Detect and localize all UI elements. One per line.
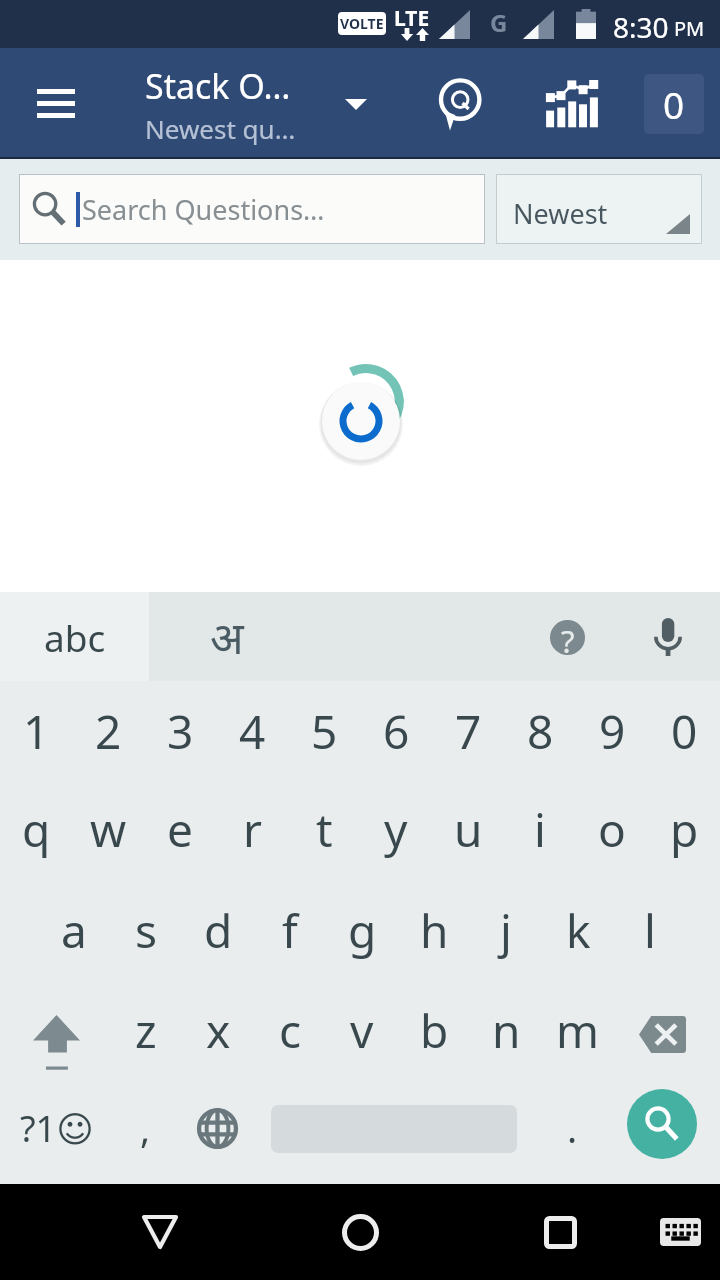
button[interactable]: r xyxy=(216,780,288,878)
button[interactable]: Help xyxy=(537,607,597,667)
staticText: 2 xyxy=(95,700,122,763)
button[interactable]: 1 xyxy=(0,682,72,780)
button[interactable]: t xyxy=(288,780,360,878)
button[interactable]: s xyxy=(110,881,182,979)
staticText: ? xyxy=(561,620,575,655)
button[interactable]: e xyxy=(144,780,216,878)
button[interactable]: अ xyxy=(149,592,304,681)
staticText: PM xyxy=(674,15,705,42)
staticText: s xyxy=(135,899,158,962)
button[interactable]: a xyxy=(38,881,110,979)
button[interactable]: m xyxy=(542,981,614,1079)
button[interactable]: Search Questions… xyxy=(19,174,485,244)
staticText: r xyxy=(243,798,262,861)
staticText: VOLTE xyxy=(340,14,384,33)
staticText: 4 xyxy=(239,700,266,763)
button[interactable]: ?1☺ xyxy=(2,1084,112,1172)
button[interactable]: 2 xyxy=(72,682,144,780)
staticText: 6 xyxy=(383,700,410,763)
button[interactable]: 0 xyxy=(648,682,720,780)
staticText: 3 xyxy=(167,700,194,763)
staticText: v xyxy=(350,999,374,1062)
staticText: i xyxy=(534,798,546,861)
button[interactable]: Newest xyxy=(496,174,702,244)
staticText: w xyxy=(90,798,127,861)
button[interactable]: Change filter xyxy=(322,70,390,138)
button[interactable]: v xyxy=(326,981,398,1079)
staticText: f xyxy=(282,899,298,962)
button[interactable]: Recent apps xyxy=(512,1184,608,1280)
button[interactable]: n xyxy=(470,981,542,1079)
button[interactable]: Space xyxy=(260,1092,528,1166)
staticText: 0 xyxy=(671,700,698,763)
button[interactable]: 0 xyxy=(644,74,704,134)
staticText: Newest qu… xyxy=(145,111,296,146)
button[interactable]: 7 xyxy=(432,682,504,780)
staticText: G xyxy=(490,6,508,39)
staticText: m xyxy=(556,999,600,1062)
staticText: t xyxy=(316,798,333,861)
button[interactable]: w xyxy=(72,780,144,878)
staticText: o xyxy=(598,798,626,861)
staticText: c xyxy=(279,999,302,1062)
button[interactable]: Back xyxy=(112,1184,208,1280)
button[interactable]: q xyxy=(0,780,72,878)
button[interactable]: Home xyxy=(312,1184,408,1280)
button[interactable]: Shift xyxy=(10,992,103,1092)
button[interactable]: j xyxy=(470,881,542,979)
staticText: . xyxy=(567,1102,578,1154)
staticText: LTE xyxy=(394,4,430,33)
staticText: e xyxy=(167,798,193,861)
button[interactable]: f xyxy=(254,881,326,979)
button[interactable]: d xyxy=(182,881,254,979)
button[interactable]: b xyxy=(398,981,470,1079)
staticText: d xyxy=(204,899,233,962)
staticText: abc xyxy=(44,612,106,662)
button[interactable]: . xyxy=(542,1084,602,1172)
button[interactable]: p xyxy=(648,780,720,878)
button[interactable]: i xyxy=(504,780,576,878)
button[interactable]: Voice input xyxy=(638,607,698,667)
button[interactable]: y xyxy=(360,780,432,878)
button[interactable]: Ask a question xyxy=(424,60,498,148)
button[interactable]: 8 xyxy=(504,682,576,780)
staticText: n xyxy=(492,999,521,1062)
button[interactable]: 4 xyxy=(216,682,288,780)
staticText: b xyxy=(420,999,449,1062)
button[interactable]: Backspace xyxy=(616,988,708,1080)
button[interactable]: g xyxy=(326,881,398,979)
button[interactable]: 3 xyxy=(144,682,216,780)
button[interactable]: Hide keyboard xyxy=(640,1192,720,1272)
staticText: 8 xyxy=(527,700,554,763)
staticText: k xyxy=(566,899,591,962)
button[interactable]: h xyxy=(398,881,470,979)
staticText: 5 xyxy=(311,700,338,763)
button[interactable]: 5 xyxy=(288,682,360,780)
staticText: l xyxy=(644,899,656,962)
button[interactable]: Change language xyxy=(180,1084,254,1172)
button[interactable]: k xyxy=(542,881,614,979)
button[interactable]: l xyxy=(614,881,686,979)
button[interactable]: Search xyxy=(612,1074,712,1174)
button[interactable]: c xyxy=(254,981,326,1079)
button[interactable]: 9 xyxy=(576,682,648,780)
button[interactable]: 6 xyxy=(360,682,432,780)
button[interactable]: x xyxy=(182,981,254,1079)
staticText: p xyxy=(670,798,699,861)
staticText: Search Questions… xyxy=(82,191,325,228)
button[interactable]: o xyxy=(576,780,648,878)
button[interactable]: Open navigation drawer xyxy=(8,68,104,140)
button[interactable]: abc xyxy=(0,592,149,681)
staticText: u xyxy=(454,798,483,861)
staticText: 1 xyxy=(23,700,50,763)
button[interactable]: Statistics xyxy=(528,62,616,146)
staticText: 9 xyxy=(599,700,626,763)
button[interactable]: z xyxy=(110,981,182,1079)
staticText: 0 xyxy=(663,79,685,129)
staticText: अ xyxy=(210,607,244,667)
staticText: 8:30 xyxy=(613,8,669,46)
staticText: g xyxy=(348,899,377,962)
button[interactable]: u xyxy=(432,780,504,878)
staticText: q xyxy=(22,798,51,861)
button[interactable]: , xyxy=(114,1084,176,1172)
